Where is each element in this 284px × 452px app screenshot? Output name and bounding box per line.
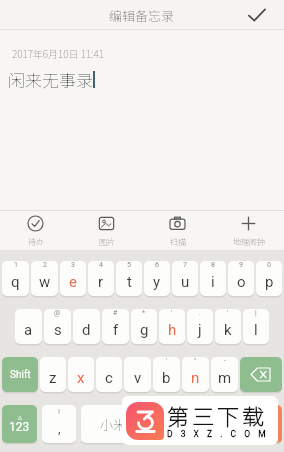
staticText: t <box>127 273 132 291</box>
staticText: b <box>162 369 171 387</box>
button[interactable] <box>240 357 282 392</box>
staticText: 6 <box>155 261 159 269</box>
button[interactable]: 5 <box>116 261 142 296</box>
staticText: 小米输入法 <box>100 415 166 434</box>
button[interactable]: Shift <box>2 357 38 392</box>
button[interactable]: ' <box>215 309 241 344</box>
button[interactable]: x <box>68 357 94 392</box>
staticText: i <box>211 273 215 291</box>
staticText: Shift <box>10 369 31 381</box>
staticText: - <box>224 357 226 365</box>
button[interactable]: 地理闹钟 <box>213 211 284 250</box>
staticText: o <box>237 273 246 291</box>
button[interactable]: 扫描 <box>142 211 213 250</box>
button[interactable]: 7 <box>172 261 198 296</box>
button[interactable]: @ <box>44 309 71 344</box>
staticText: 8 <box>211 261 215 269</box>
button[interactable]: 4 <box>88 261 114 296</box>
staticText: , <box>58 421 61 436</box>
staticText: ! <box>58 407 61 416</box>
staticText: * <box>142 309 146 317</box>
button[interactable]: 1 <box>2 261 29 296</box>
staticText: 地理闹钟 <box>233 236 265 248</box>
staticText: m <box>218 369 232 387</box>
staticText: 3 <box>71 261 75 269</box>
staticText: v <box>134 369 142 387</box>
staticText: u <box>181 273 190 291</box>
button[interactable]: 8 <box>200 261 226 296</box>
button[interactable]: 图片 <box>71 211 142 250</box>
staticText: 第三下载 <box>167 399 268 431</box>
staticText: # <box>113 309 118 317</box>
staticText: D 3 X Z . C O M <box>167 429 269 439</box>
staticText: 编辑备忘录 <box>109 6 175 25</box>
staticText: r <box>98 273 104 291</box>
button[interactable]: . <box>187 309 213 344</box>
staticText: f <box>113 321 119 339</box>
staticText: 图片 <box>99 236 115 248</box>
staticText: 1 <box>14 261 18 269</box>
button[interactable]: c <box>96 357 122 392</box>
button[interactable]: d <box>73 309 100 344</box>
staticText: c <box>105 369 113 387</box>
staticText: @ <box>54 309 61 317</box>
staticText: 待办 <box>28 236 44 248</box>
staticText: ' <box>227 309 229 317</box>
staticText: | <box>255 309 257 317</box>
button[interactable] <box>248 8 266 22</box>
button[interactable]: △ <box>2 405 37 443</box>
staticText: p <box>265 273 274 291</box>
button[interactable]: ' <box>159 309 185 344</box>
staticText: y <box>153 273 161 291</box>
staticText: 2 <box>43 261 47 269</box>
staticText: 7 <box>183 261 187 269</box>
staticText: g <box>140 321 149 339</box>
button[interactable]: 小米输入法 <box>81 405 241 443</box>
staticText: q <box>11 273 20 291</box>
staticText: 123 <box>9 420 30 434</box>
staticText: 0 <box>267 261 271 269</box>
staticText: 2017年6月10日 11:41 <box>12 46 104 60</box>
staticText: 扫描 <box>170 236 186 248</box>
staticText: △ <box>18 414 22 420</box>
button[interactable]: 6 <box>144 261 170 296</box>
staticText: k <box>224 321 232 339</box>
staticText: z <box>49 369 57 387</box>
staticText: x <box>77 369 85 387</box>
staticText: ' <box>171 309 173 317</box>
staticText: n <box>191 369 200 387</box>
staticText: " <box>194 357 197 365</box>
staticText: h <box>168 321 177 339</box>
staticText: 闲来无事录 <box>8 67 93 92</box>
staticText: 5 <box>127 261 131 269</box>
staticText: 9 <box>239 261 243 269</box>
button[interactable]: * <box>131 309 157 344</box>
button[interactable]: 9 <box>228 261 254 296</box>
button[interactable]: # <box>102 309 129 344</box>
staticText: w <box>39 273 51 291</box>
button[interactable]: 0 <box>256 261 282 296</box>
button[interactable]: ! <box>42 405 76 443</box>
staticText: ' <box>166 357 168 365</box>
button[interactable]: v <box>124 357 151 392</box>
staticText: d <box>82 321 91 339</box>
staticText: e <box>69 273 77 291</box>
staticText: . <box>199 309 201 317</box>
staticText: j <box>198 321 202 339</box>
button[interactable]: z <box>40 357 66 392</box>
button[interactable]: 2 <box>31 261 58 296</box>
staticText: a <box>24 321 33 339</box>
button[interactable]: 3 <box>60 261 86 296</box>
button[interactable] <box>243 405 282 443</box>
staticText: s <box>54 321 62 339</box>
staticText: 4 <box>99 261 103 269</box>
button[interactable]: - <box>211 357 238 392</box>
button[interactable]: 待办 <box>0 211 71 250</box>
button[interactable]: ' <box>153 357 180 392</box>
button[interactable]: " <box>182 357 209 392</box>
staticText: l <box>254 321 258 339</box>
button[interactable]: | <box>243 309 269 344</box>
button[interactable]: a <box>15 309 42 344</box>
